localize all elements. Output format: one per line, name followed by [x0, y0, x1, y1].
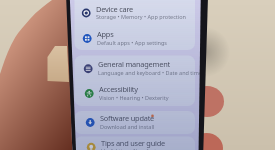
staticText: Download and install	[100, 123, 155, 130]
staticText: Storage • Memory • App protection	[96, 13, 186, 20]
button[interactable]: General management	[77, 56, 198, 82]
staticText: Vision • Hearing • Dexterity	[99, 94, 169, 101]
staticText: Device care	[96, 4, 134, 14]
button[interactable]: Device care	[75, 0, 196, 27]
button[interactable]: Accessibility	[78, 81, 199, 106]
staticText: Software update	[100, 113, 155, 123]
button[interactable]: Software update	[79, 111, 200, 134]
staticText: Tips and user guide	[101, 138, 166, 148]
staticText: General management	[98, 59, 171, 69]
button[interactable]: Tips and user guide	[80, 137, 201, 150]
staticText: Default apps • App settings	[97, 39, 167, 46]
staticText: Apps	[97, 29, 114, 39]
staticText: Language and keyboard • Date and time	[98, 69, 201, 76]
button[interactable]: Apps	[76, 27, 197, 50]
staticText: Accessibility	[99, 84, 138, 94]
staticText: Useful tips • New features	[101, 147, 168, 150]
